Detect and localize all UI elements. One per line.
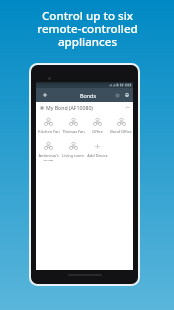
button[interactable]: My Bond (AF10080)	[36, 102, 133, 113]
staticText: Ambrosia's room	[38, 153, 59, 161]
staticText: Kitchen Fan	[38, 129, 60, 134]
staticText: Living room	[62, 153, 84, 158]
button[interactable]: Add Device	[85, 141, 109, 161]
button[interactable]: Thomas Fan	[61, 117, 85, 137]
staticText: Bond Office	[110, 129, 132, 134]
button[interactable]: Kitchen Fan	[36, 117, 61, 137]
staticText: My Bond (AF10080)	[46, 104, 93, 111]
staticText: Office	[92, 129, 103, 134]
button[interactable]: Ambrosia's room	[36, 141, 61, 161]
button[interactable]: Account	[122, 90, 132, 100]
button[interactable]: Office	[85, 117, 109, 137]
staticText: Add Device	[87, 153, 108, 158]
staticText: Thomas Fan	[62, 129, 85, 134]
button[interactable]: Add device	[39, 89, 51, 101]
button[interactable]: Refresh	[112, 90, 122, 100]
button[interactable]: Living room	[61, 141, 85, 161]
staticText: Bonds	[80, 92, 96, 99]
staticText: Control up to six remote-controlled appl…	[37, 8, 138, 49]
button[interactable]: Bond Office	[109, 117, 133, 137]
